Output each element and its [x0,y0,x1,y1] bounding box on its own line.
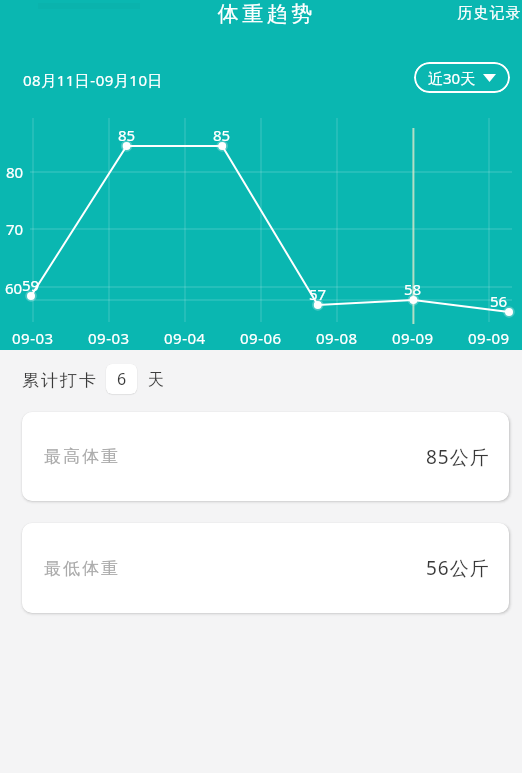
staticText: 6 [117,368,127,390]
staticText: 70 [6,219,24,239]
button[interactable]: 历史记录 [453,0,522,27]
staticText: 天 [148,370,164,390]
staticText: 57 [309,284,327,304]
staticText: 85公斤 [426,444,490,470]
staticText: 59 [22,275,40,295]
staticText: 09-06 [240,328,282,348]
staticText: 累计打卡 [21,370,97,391]
staticText: 最高体重 [43,446,119,467]
button[interactable]: 近30天 [414,62,510,93]
button[interactable]: 最高体重 [22,412,509,501]
staticText: 56公斤 [426,555,490,581]
staticText: 最低体重 [43,558,119,579]
staticText: 09-08 [316,328,358,348]
staticText: 09-09 [468,328,510,348]
staticText: 60 [5,278,23,298]
staticText: 09-04 [164,328,206,348]
staticText: 58 [404,279,422,299]
staticText: 09-03 [88,328,130,348]
staticText: 85 [118,125,136,145]
staticText: 09-09 [392,328,434,348]
staticText: 体重趋势 [216,1,314,27]
staticText: 近30天 [428,68,476,88]
staticText: 历史记录 [457,4,521,23]
button[interactable]: 最低体重 [22,523,509,613]
staticText: 08月11日-09月10日 [23,70,163,90]
staticText: 85 [213,125,231,145]
staticText: 80 [6,162,24,182]
staticText: 56 [490,291,508,311]
staticText: 09-03 [12,328,54,348]
